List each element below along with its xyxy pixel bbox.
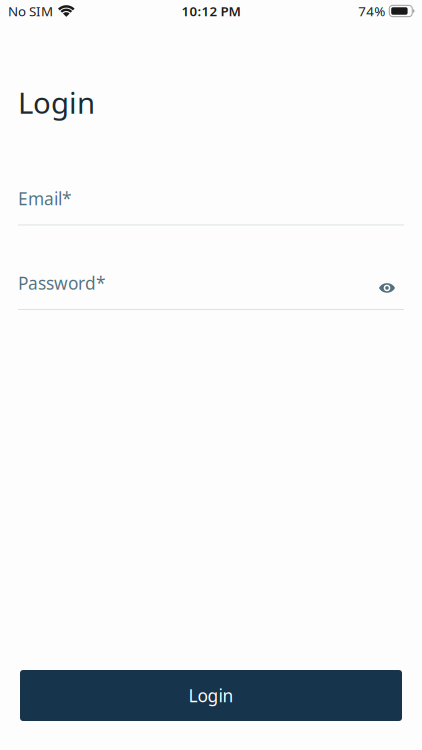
staticText: Login [188,684,233,707]
staticText: 74% [358,2,385,20]
staticText: Password* [18,271,106,294]
button[interactable]: Password* [18,272,404,310]
staticText: Email* [18,187,72,210]
button[interactable]: Email* [18,187,404,225]
staticText: 10:12 PM [181,2,240,20]
staticText: Login [18,83,95,122]
button[interactable]: Login [20,670,402,721]
button[interactable]: Show password [374,272,404,298]
staticText: No SIM [8,2,53,20]
